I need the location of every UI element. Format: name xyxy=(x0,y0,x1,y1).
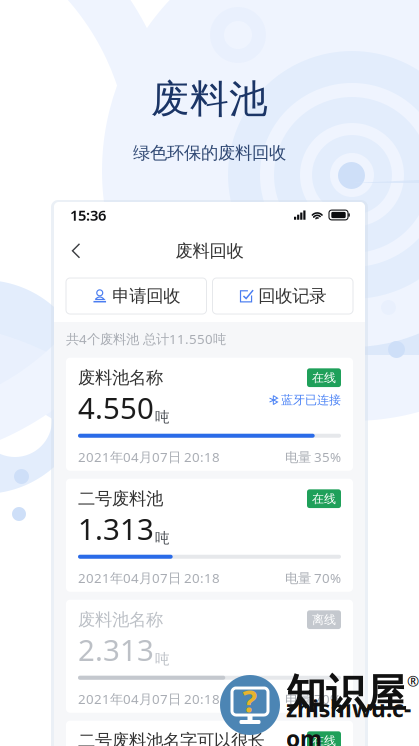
staticText: ® xyxy=(407,671,419,691)
staticText: 在线 xyxy=(312,491,336,506)
staticText: 废料池名称 xyxy=(78,609,163,630)
staticText: 离线 xyxy=(312,612,336,627)
staticText: 二号废料池 xyxy=(78,488,163,509)
button[interactable]: 回收记录 xyxy=(212,278,353,314)
staticText: 吨 xyxy=(155,408,170,426)
button[interactable]: 申请回收 xyxy=(66,278,206,314)
staticText: 绿色环保的废料回收 xyxy=(133,142,286,164)
staticText: 在线 xyxy=(312,370,336,385)
button[interactable]: 废料池名称 xyxy=(66,358,353,471)
staticText: 废料回收 xyxy=(175,240,243,262)
staticText: 15:36 xyxy=(70,205,106,225)
staticText: 2021年04月07日 20:18 xyxy=(78,448,220,466)
staticText: 在线 xyxy=(312,733,336,746)
staticText: 4.550 xyxy=(78,388,154,427)
staticText: 吨 xyxy=(155,529,170,547)
staticText: 2021年04月07日 20:18 xyxy=(78,569,220,587)
staticText: 二号废料池名字可以很长 xyxy=(78,730,265,746)
staticText: 1.313 xyxy=(78,509,154,548)
staticText: 蓝牙已连接 xyxy=(281,393,341,407)
button[interactable]: Back xyxy=(62,237,90,265)
staticText: 申请回收 xyxy=(112,285,180,307)
staticText: 共4个废料池 总计11.550吨 xyxy=(66,330,226,348)
staticText: 回收记录 xyxy=(258,285,326,307)
staticText: 吨 xyxy=(155,650,170,668)
staticText: 电量 35% xyxy=(285,448,341,466)
button[interactable]: 废料池名称 xyxy=(66,600,353,713)
staticText: 2.313 xyxy=(78,630,154,669)
staticText: 废料池 xyxy=(151,75,268,123)
staticText: 2021年04月07日 20:18 xyxy=(78,690,220,708)
staticText: 知识屋 xyxy=(286,669,406,718)
staticText: 电量 70% xyxy=(285,690,341,708)
staticText: 电量 70% xyxy=(285,569,341,587)
button[interactable]: 二号废料池 xyxy=(66,479,353,592)
staticText: zhishiwu.com xyxy=(286,693,411,746)
staticText: ? xyxy=(242,680,257,721)
staticText: 废料池名称 xyxy=(78,367,163,388)
button[interactable]: 二号废料池名字可以很长 xyxy=(66,721,353,746)
